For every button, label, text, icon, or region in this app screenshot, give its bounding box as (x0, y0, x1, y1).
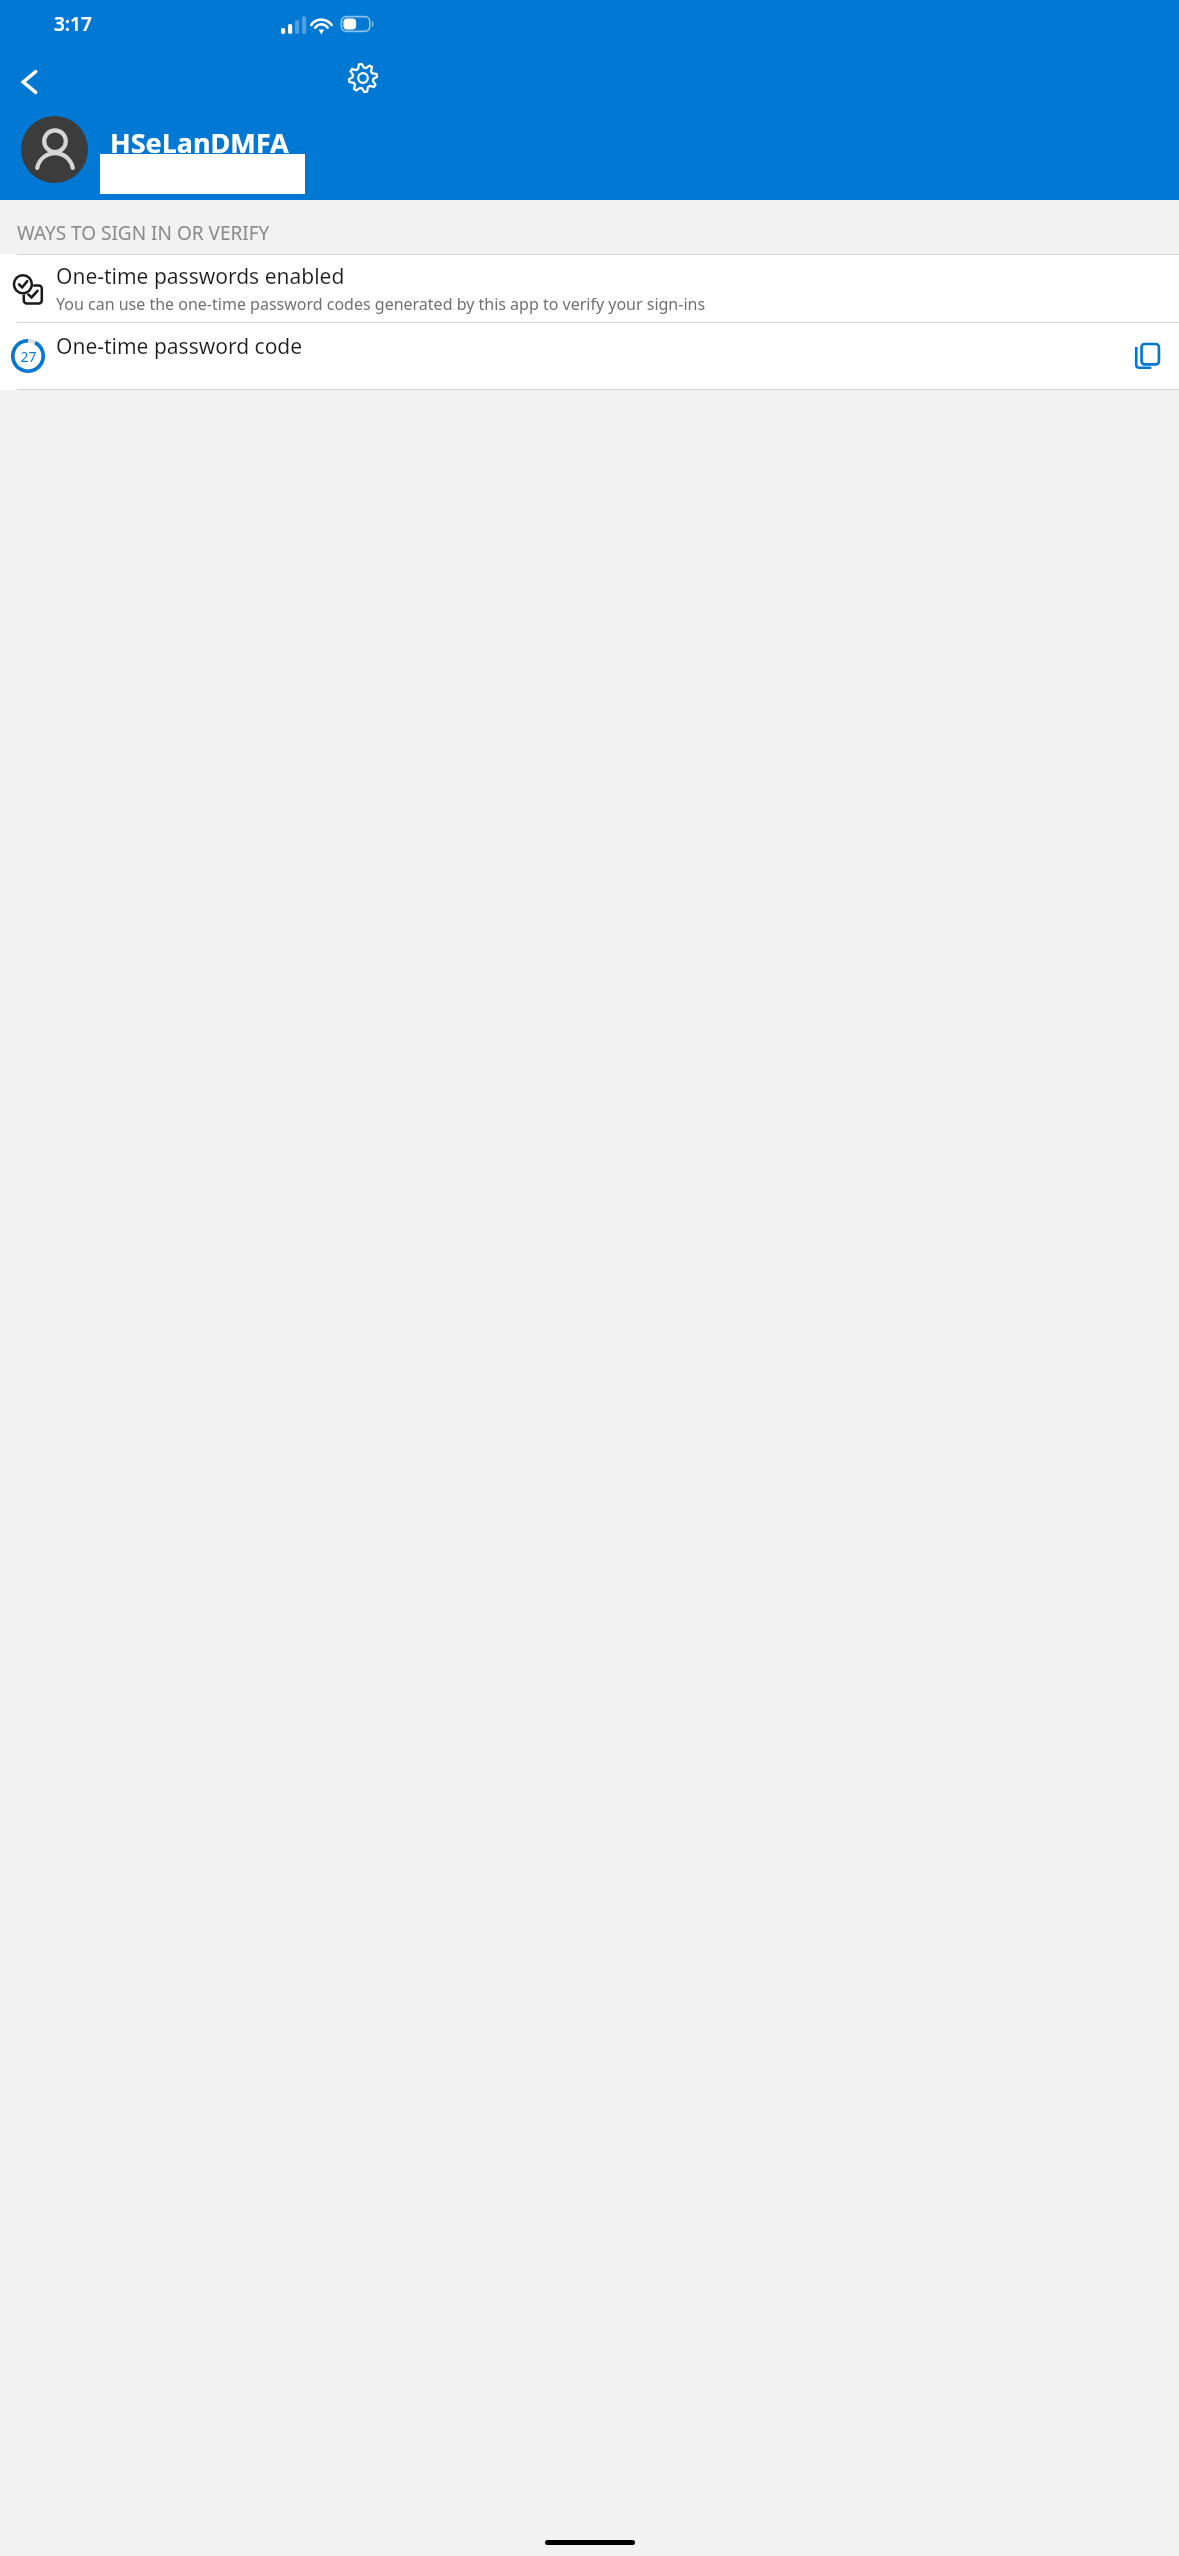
button[interactable]: Back (0, 52, 60, 112)
button[interactable]: 27 (0, 323, 1179, 389)
staticText: 3:17 (54, 11, 92, 37)
button[interactable]: One-time passwords enabled (0, 255, 1179, 322)
staticText: One-time passwords enabled (56, 262, 345, 291)
staticText: WAYS TO SIGN IN OR VERIFY (17, 220, 270, 246)
staticText: You can use the one-time password codes … (56, 293, 706, 315)
button[interactable]: Settings (333, 48, 393, 108)
staticText: HSeLanDMFA (110, 124, 289, 161)
button[interactable]: Copy code (1117, 323, 1179, 389)
staticText: 27 (20, 347, 37, 366)
staticText: One-time password code (56, 332, 1117, 361)
